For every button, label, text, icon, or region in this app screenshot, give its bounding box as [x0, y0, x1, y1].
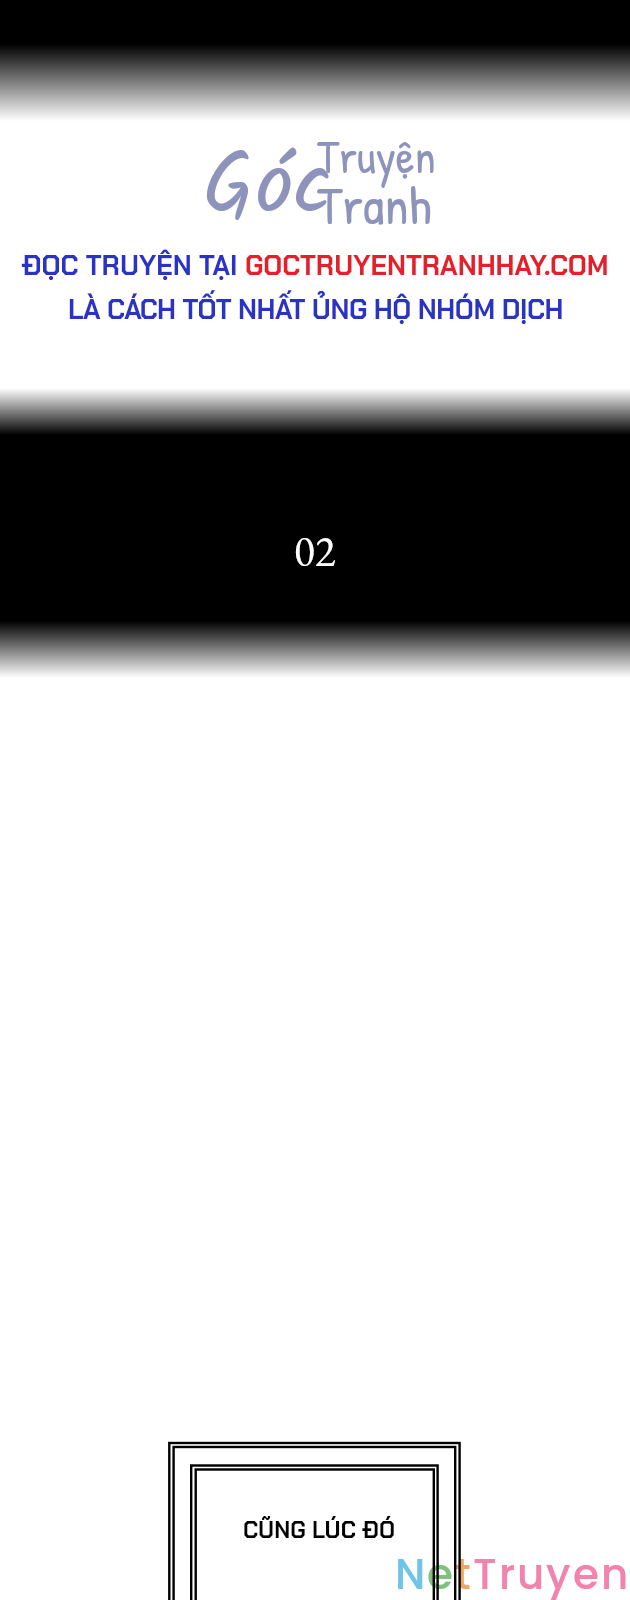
staticText: LÀ CÁCH TỐT NHẤT ỦNG HỘ NHÓM DỊCH	[68, 292, 563, 327]
staticText: e	[573, 1545, 601, 1600]
staticText: CŨNG LÚC ĐÓ	[243, 1515, 396, 1545]
staticText: e	[427, 1545, 455, 1600]
staticText: 02	[294, 523, 336, 579]
staticText: r	[499, 1545, 517, 1600]
staticText: Góc	[203, 122, 332, 257]
staticText: Tranh	[317, 168, 432, 241]
staticText: Truyện	[317, 124, 436, 188]
staticText: N	[395, 1545, 427, 1600]
staticText: ĐỌC TRUYỆN TẠI GOCTRUYENTRANHHAY.COM	[21, 248, 609, 283]
staticText: T	[473, 1545, 499, 1600]
staticText: u	[517, 1545, 546, 1600]
button[interactable]: ĐỌC TRUYỆN TẠI GOCTRUYENTRANHHAY.COM	[0, 120, 630, 340]
staticText: y	[546, 1545, 573, 1600]
staticText: n	[601, 1545, 630, 1600]
staticText: t	[455, 1545, 473, 1600]
